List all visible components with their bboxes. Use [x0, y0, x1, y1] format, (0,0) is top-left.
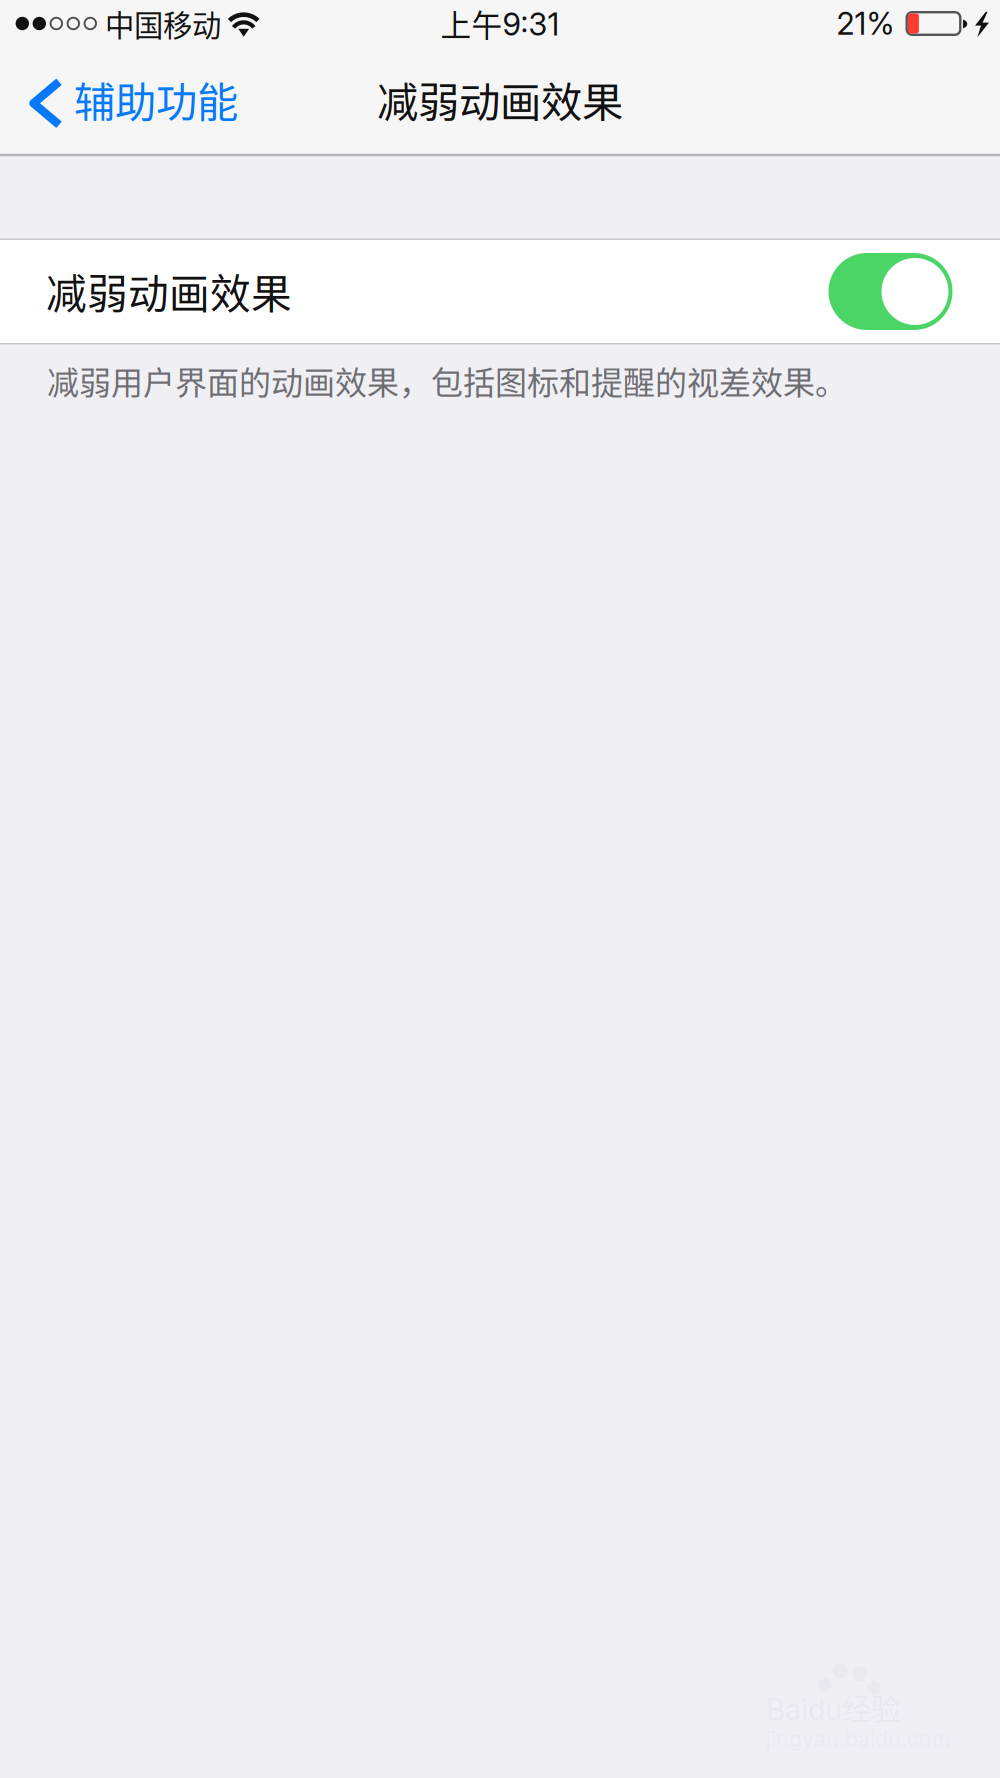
staticText: 减弱动画效果	[46, 262, 292, 320]
button[interactable]: 辅助功能	[0, 57, 254, 155]
staticText: 减弱动画效果	[377, 69, 623, 129]
button[interactable]: 减弱动画效果	[0, 240, 1000, 343]
staticText: 中国移动	[105, 2, 221, 45]
staticText: 减弱用户界面的动画效果，包括图标和提醒的视差效果。	[47, 357, 847, 404]
staticText: 上午9:31	[440, 1, 559, 46]
staticText: 辅助功能	[74, 69, 238, 129]
staticText: 21%	[836, 5, 894, 42]
